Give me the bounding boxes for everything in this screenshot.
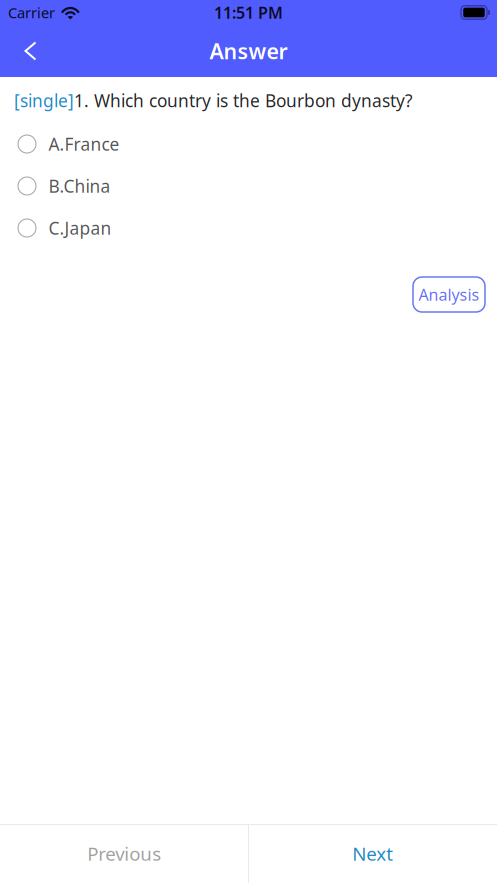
staticText: 1. Which country is the Bourbon dynasty?	[74, 89, 413, 112]
staticText: B.China	[49, 174, 111, 197]
button[interactable]: C.Japan	[0, 207, 497, 249]
button[interactable]: Analysis	[413, 277, 485, 312]
staticText: Answer	[209, 37, 287, 65]
staticText: A.France	[49, 132, 120, 155]
staticText: Carrier	[8, 3, 55, 22]
button[interactable]: Next	[248, 824, 497, 883]
staticText: 11:51 PM	[214, 2, 283, 23]
button[interactable]: Previous	[0, 824, 248, 883]
staticText: Analysis	[418, 284, 479, 305]
button[interactable]: A.France	[0, 123, 497, 165]
staticText: [single]	[14, 89, 74, 112]
staticText: Next	[352, 841, 393, 866]
button[interactable]: B.China	[0, 165, 497, 207]
staticText: Previous	[87, 841, 161, 866]
staticText: C.Japan	[49, 216, 112, 239]
button[interactable]: Back	[0, 25, 54, 77]
